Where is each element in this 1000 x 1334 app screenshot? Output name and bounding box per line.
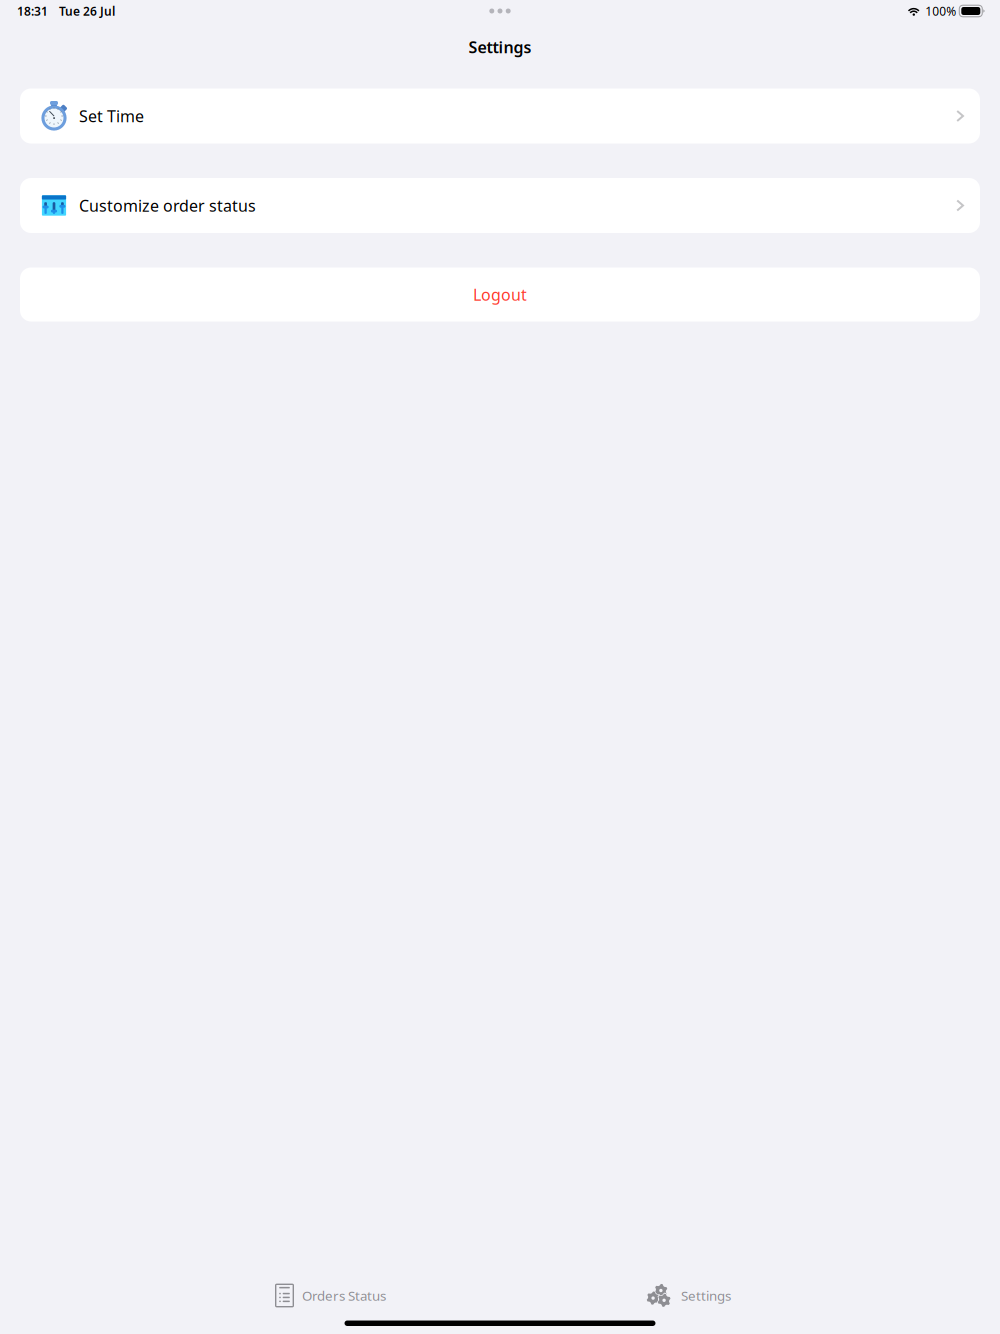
button[interactable]: Settings xyxy=(636,1273,741,1317)
staticText: 100% xyxy=(925,3,956,19)
button[interactable]: Customize order status xyxy=(20,178,980,233)
button[interactable]: Logout xyxy=(20,267,980,321)
staticText: Tue 26 Jul xyxy=(59,3,115,19)
staticText: 18:31 xyxy=(17,3,48,19)
button[interactable]: Orders Status xyxy=(265,1273,396,1317)
staticText: Customize order status xyxy=(79,195,256,216)
staticText: Settings xyxy=(681,1287,731,1304)
staticText: Logout xyxy=(473,284,527,305)
staticText: Settings xyxy=(468,36,531,58)
staticText: Orders Status xyxy=(302,1287,386,1304)
staticText: Set Time xyxy=(79,105,144,127)
button[interactable]: Set Time xyxy=(20,88,980,143)
